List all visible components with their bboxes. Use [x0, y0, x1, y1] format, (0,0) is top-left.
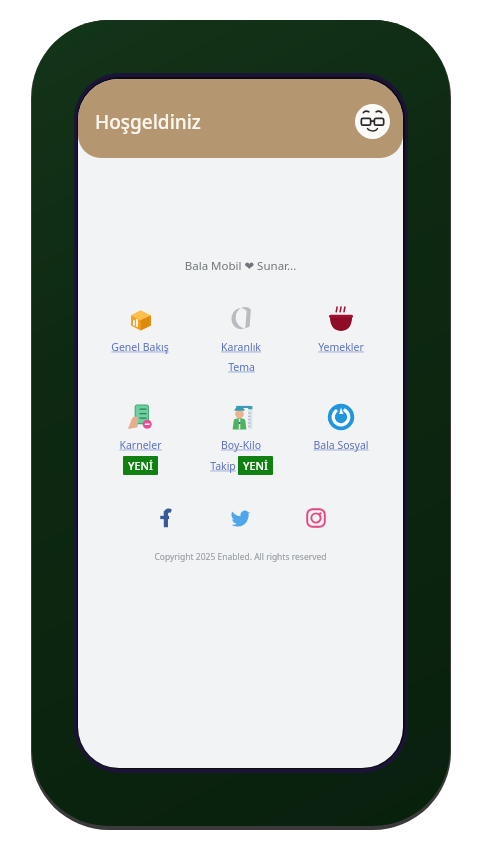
staticText: Karanlık	[221, 340, 261, 354]
button[interactable]: Yemekler	[293, 302, 389, 356]
staticText: Copyright 2025 Enabled. All rights reser…	[78, 551, 403, 563]
staticText: Takip	[210, 459, 236, 473]
staticText: Genel Bakış	[111, 340, 169, 354]
staticText: Bala Sosyal	[313, 438, 369, 452]
button[interactable]: Boy-Kilo	[193, 400, 289, 477]
staticText: Yemekler	[318, 340, 364, 354]
button[interactable]: Profile	[355, 104, 390, 139]
button[interactable]: Bala Sosyal	[293, 400, 389, 454]
staticText: YENİ	[243, 458, 268, 473]
staticText: Bala Mobil ❤ Sunar...	[78, 258, 403, 274]
button[interactable]: Karanlık	[193, 302, 289, 376]
staticText: Boy-Kilo	[221, 438, 261, 452]
staticText: Hoşgeldiniz	[95, 109, 201, 135]
button[interactable]: Instagram	[301, 503, 331, 533]
button[interactable]: Karneler	[92, 400, 188, 477]
button[interactable]: Facebook	[151, 503, 181, 533]
staticText: YENİ	[128, 458, 153, 473]
button[interactable]: Twitter	[226, 503, 256, 533]
button[interactable]: Genel Bakış	[92, 302, 188, 356]
staticText: Karneler	[119, 438, 162, 452]
staticText: Tema	[228, 360, 255, 374]
